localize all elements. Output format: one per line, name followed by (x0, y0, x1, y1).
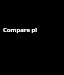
staticText: Compare plans (3, 26, 37, 34)
